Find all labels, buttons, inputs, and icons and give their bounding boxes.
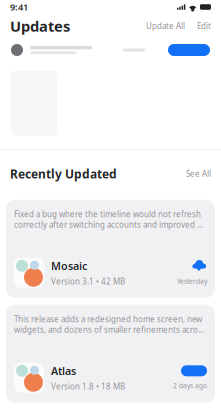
staticText: Version 3.1 • 42 MB (51, 276, 125, 287)
staticText: Updates (10, 16, 70, 36)
staticText: Fixed a bug where the timeline would not… (14, 209, 207, 230)
staticText: Update All (146, 21, 185, 31)
staticText: Atlas (51, 364, 76, 378)
button[interactable] (0, 38, 221, 62)
button[interactable]: This release adds a redesigned home scre… (6, 305, 215, 403)
button[interactable]: See All (186, 168, 211, 179)
button[interactable]: Update All (146, 21, 185, 31)
staticText: Version 1.8 • 18 MB (51, 381, 125, 392)
staticText: This release adds a redesigned home scre… (14, 314, 207, 335)
staticText: 2 days ago (173, 381, 207, 390)
staticText: 9:41 (10, 1, 28, 13)
staticText: See All (186, 168, 211, 179)
staticText: Recently Updated (10, 166, 117, 182)
button[interactable]: Fixed a bug where the timeline would not… (6, 200, 215, 298)
staticText: Edit (197, 21, 211, 31)
staticText: Mosaic (51, 259, 87, 273)
button[interactable]: Edit (197, 21, 211, 31)
staticText: Yesterday (177, 277, 207, 286)
